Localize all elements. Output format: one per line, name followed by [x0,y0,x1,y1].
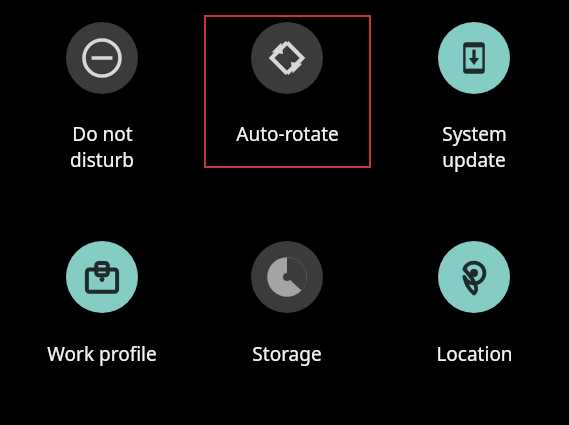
staticText: Location [436,341,513,367]
button[interactable]: Work profile [10,241,194,367]
staticText: System [442,121,507,147]
staticText: Auto-rotate [236,121,339,147]
button[interactable]: Location [382,241,566,367]
staticText: Storage [252,341,322,367]
staticText: update [442,147,506,173]
staticText: Work profile [47,341,157,367]
staticText: Do not [72,121,133,147]
staticText: disturb [70,147,134,173]
button[interactable]: Do not disturb [10,22,194,173]
button[interactable]: Auto-rotate [195,22,379,147]
button[interactable]: Storage [195,241,379,367]
button[interactable]: System update [382,22,566,173]
